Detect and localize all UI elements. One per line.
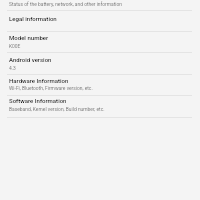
staticText: 4.3 <box>9 65 16 71</box>
staticText: Baseband, Kernel version, Build number, … <box>9 106 105 112</box>
button[interactable]: Android version <box>0 53 200 74</box>
staticText: K00E <box>9 43 21 49</box>
button[interactable]: Software Information <box>0 96 200 117</box>
button[interactable]: Model number <box>0 32 200 52</box>
staticText: Wi-Fi, Bluetooth, Firmware version, etc. <box>9 85 93 91</box>
staticText: Model number <box>9 34 49 41</box>
staticText: Android version <box>9 56 52 63</box>
button[interactable]: Hardware Information <box>0 75 200 95</box>
button[interactable]: Legal information <box>0 11 200 31</box>
staticText: Hardware Information <box>9 77 69 84</box>
staticText: Software Information <box>9 97 67 104</box>
button[interactable]: Status of the battery, network, and othe… <box>0 0 200 10</box>
staticText: Status of the battery, network, and othe… <box>9 1 122 7</box>
staticText: Legal information <box>9 15 57 22</box>
